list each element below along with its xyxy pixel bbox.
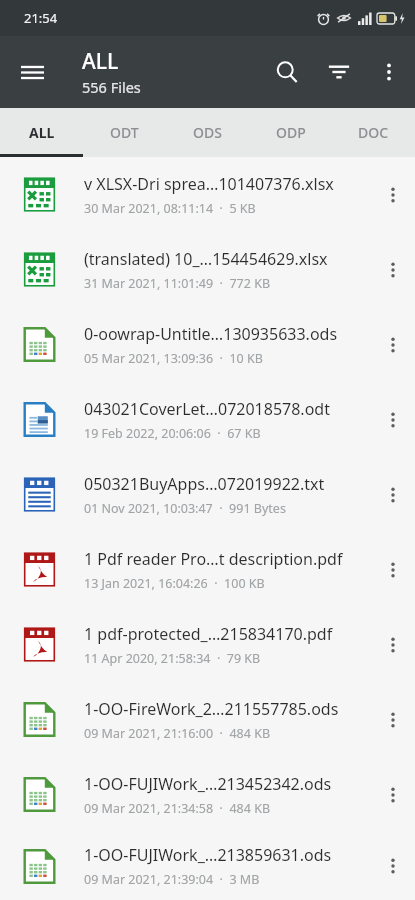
- button[interactable]: ODT: [83, 108, 166, 157]
- staticText: 13 Jan 2021, 16:04:26 · 100 KB: [84, 575, 265, 592]
- staticText: (translated) 10_…154454629.xlsx: [84, 248, 328, 270]
- staticText: 30 Mar 2021, 08:11:14 · 5 KB: [84, 200, 256, 217]
- button[interactable]: Open navigation menu: [8, 48, 56, 96]
- button[interactable]: 1-OO-FUJIWork_…213452342.ods: [0, 757, 415, 832]
- staticText: ALL: [29, 123, 55, 142]
- button[interactable]: (translated) 10_…154454629.xlsx: [0, 232, 415, 307]
- button[interactable]: More options for file: [371, 757, 415, 832]
- staticText: 05 Mar 2021, 13:09:36 · 10 KB: [84, 350, 263, 367]
- staticText: 043021CoverLet…072018578.odt: [84, 398, 330, 420]
- button[interactable]: More options: [365, 48, 413, 96]
- staticText: 1-OO-FUJIWork_…213859631.ods: [84, 844, 332, 866]
- button[interactable]: 050321BuyApps…072019922.txt: [0, 457, 415, 532]
- button[interactable]: More options for file: [371, 382, 415, 457]
- button[interactable]: 1-OO-FireWork_2…211557785.ods: [0, 682, 415, 757]
- button[interactable]: 1-OO-FUJIWork_…213859631.ods: [0, 832, 415, 900]
- button[interactable]: More options for file: [371, 157, 415, 232]
- staticText: ALL: [82, 47, 119, 76]
- button[interactable]: More options for file: [371, 607, 415, 682]
- button[interactable]: ODP: [249, 108, 332, 157]
- button[interactable]: DOC: [332, 108, 415, 157]
- staticText: 556 Files: [82, 77, 141, 97]
- button[interactable]: More options for file: [371, 832, 415, 900]
- staticText: 1 pdf-protected_…215834170.pdf: [84, 623, 333, 645]
- button[interactable]: ALL: [0, 108, 83, 157]
- button[interactable]: Filter and sort: [313, 46, 365, 98]
- button[interactable]: 1 Pdf reader Pro…t description.pdf: [0, 532, 415, 607]
- staticText: 11 Apr 2020, 21:58:34 · 79 KB: [84, 650, 261, 667]
- staticText: 09 Mar 2021, 21:34:58 · 484 KB: [84, 800, 271, 817]
- button[interactable]: 0-oowrap-Untitle…130935633.ods: [0, 307, 415, 382]
- button[interactable]: More options for file: [371, 307, 415, 382]
- staticText: 050321BuyApps…072019922.txt: [84, 473, 325, 495]
- button[interactable]: 1 pdf-protected_…215834170.pdf: [0, 607, 415, 682]
- staticText: 09 Mar 2021, 21:16:00 · 484 KB: [84, 725, 271, 742]
- button[interactable]: More options for file: [371, 532, 415, 607]
- button[interactable]: Search: [261, 46, 313, 98]
- staticText: 1-OO-FUJIWork_…213452342.ods: [84, 773, 332, 795]
- button[interactable]: More options for file: [371, 682, 415, 757]
- staticText: 31 Mar 2021, 11:01:49 · 772 KB: [84, 275, 271, 292]
- staticText: ODP: [276, 123, 306, 142]
- button[interactable]: 043021CoverLet…072018578.odt: [0, 382, 415, 457]
- staticText: 1-OO-FireWork_2…211557785.ods: [84, 698, 339, 720]
- staticText: 21:54: [24, 9, 58, 27]
- staticText: DOC: [358, 123, 389, 142]
- button[interactable]: v XLSX-Dri sprea…101407376.xlsx: [0, 157, 415, 232]
- staticText: 09 Mar 2021, 21:39:04 · 3 MB: [84, 871, 260, 888]
- button[interactable]: More options for file: [371, 457, 415, 532]
- button[interactable]: More options for file: [371, 232, 415, 307]
- button[interactable]: ODS: [166, 108, 249, 157]
- staticText: 1 Pdf reader Pro…t description.pdf: [84, 548, 343, 570]
- staticText: 01 Nov 2021, 10:03:47 · 991 Bytes: [84, 500, 286, 517]
- staticText: ODT: [110, 123, 139, 142]
- staticText: 19 Feb 2022, 20:06:06 · 67 KB: [84, 425, 261, 442]
- staticText: v XLSX-Dri sprea…101407376.xlsx: [84, 173, 334, 195]
- staticText: ODS: [193, 123, 222, 142]
- staticText: 0-oowrap-Untitle…130935633.ods: [84, 323, 338, 345]
